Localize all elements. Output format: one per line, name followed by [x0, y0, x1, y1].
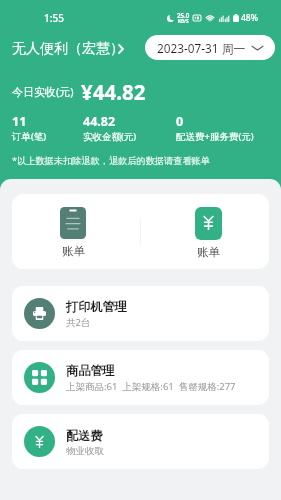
staticText: 2023-07-31 周一	[157, 40, 246, 56]
staticText: 无人便利（宏慧）	[12, 40, 124, 58]
staticText: 账单	[62, 244, 85, 258]
staticText: KB/S	[178, 18, 189, 24]
button[interactable]: 账单	[140, 194, 269, 269]
staticText: 商品管理	[66, 363, 115, 378]
button[interactable]: 账单	[12, 194, 140, 269]
staticText: 25.0	[177, 11, 190, 19]
button[interactable]: 无人便利（宏慧）	[12, 39, 130, 57]
staticText: 订单(笔)	[12, 130, 47, 143]
staticText: 账单	[197, 245, 220, 259]
staticText: 实收金额(元)	[83, 130, 137, 143]
staticText: 配送费	[66, 428, 103, 443]
staticText: 今日实收(元)	[12, 84, 74, 99]
staticText: 配送费+服务费(元)	[176, 130, 254, 143]
staticText: 物业收取	[66, 445, 104, 457]
button[interactable]: 配送费	[12, 414, 269, 469]
staticText: 11	[12, 113, 27, 130]
staticText: 1:55	[44, 11, 64, 25]
button[interactable]: 打印机管理	[12, 286, 269, 341]
button[interactable]: 商品管理	[12, 350, 269, 405]
staticText: 上架商品:61 上架规格:61 售罄规格:277	[66, 380, 236, 393]
staticText: 打印机管理	[66, 299, 127, 314]
staticText: 共2台	[66, 316, 91, 329]
staticText: 44.82	[83, 113, 116, 130]
staticText: 0	[176, 113, 184, 130]
button[interactable]: 2023-07-31 周一	[145, 35, 275, 60]
staticText: *以上数据未扣除退款，退款后的数据请查看账单	[12, 154, 210, 167]
staticText: ¥44.82	[81, 78, 146, 106]
staticText: 48%	[241, 12, 258, 24]
